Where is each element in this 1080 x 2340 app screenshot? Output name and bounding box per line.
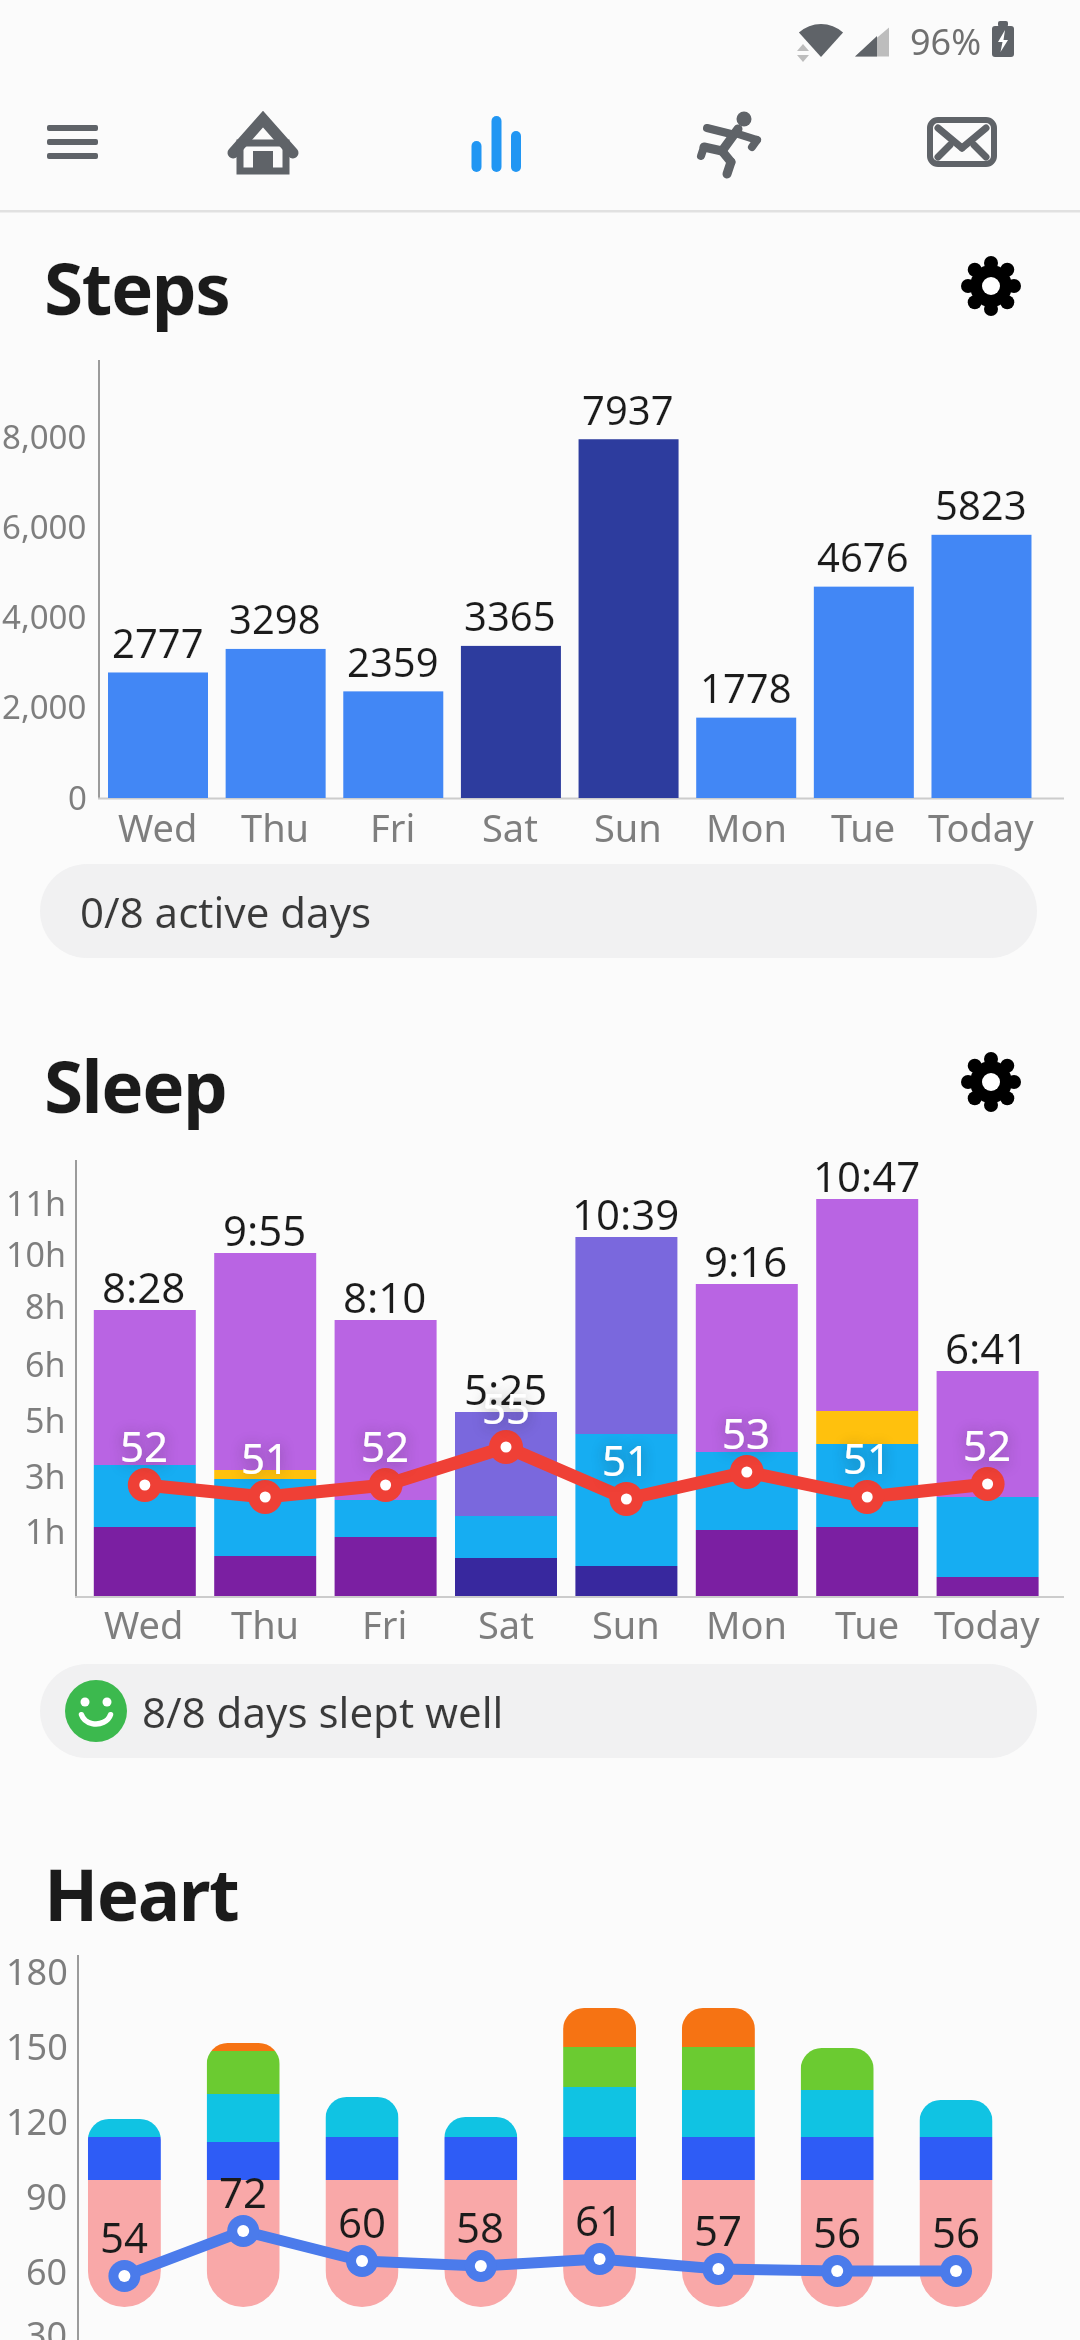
staticText: 90 [26, 2172, 68, 2221]
staticText: 8/8 days slept well [142, 1683, 504, 1740]
staticText: Thu [241, 801, 310, 853]
staticText: Wed [104, 1598, 184, 1650]
staticText: 56 [932, 2203, 981, 2260]
staticText: 3298 [229, 591, 321, 645]
staticText: 61 [575, 2191, 624, 2248]
staticText: 2359 [347, 634, 439, 688]
staticText: 9:55 [223, 1201, 307, 1258]
staticText: Fri [362, 1598, 408, 1650]
staticText: 8:28 [102, 1258, 186, 1315]
staticText: 52 [361, 1417, 410, 1474]
button[interactable]: 8/8 days slept well [40, 1664, 1037, 1758]
staticText: 51 [241, 1429, 290, 1486]
staticText: 5h [25, 1397, 66, 1443]
staticText: 2777 [112, 615, 204, 669]
staticText: Mon [706, 801, 787, 853]
staticText: Sun [592, 1598, 660, 1650]
staticText: 6:41 [945, 1319, 1029, 1376]
staticText: 58 [456, 2198, 505, 2255]
staticText: 3h [25, 1453, 66, 1499]
staticText: 6,000 [2, 504, 87, 549]
staticText: 96% [910, 17, 982, 66]
staticText: 55 [482, 1379, 531, 1436]
staticText: Wed [118, 801, 198, 853]
staticText: 0/8 active days [80, 883, 372, 940]
button[interactable] [455, 103, 539, 187]
staticText: 4676 [817, 529, 909, 583]
staticText: 120 [6, 2097, 68, 2146]
staticText: 30 [26, 2310, 68, 2340]
staticText: 6h [25, 1341, 66, 1387]
button[interactable] [687, 103, 771, 187]
staticText: Fri [370, 801, 416, 853]
staticText: 3365 [464, 588, 556, 642]
staticText: 10:47 [813, 1147, 921, 1204]
staticText: 54 [100, 2208, 149, 2265]
staticText: 51 [602, 1431, 651, 1488]
staticText: 10h [6, 1231, 66, 1277]
staticText: 1778 [700, 660, 792, 714]
button[interactable] [920, 103, 1004, 187]
staticText: Tue [831, 801, 896, 853]
staticText: 5:25 [464, 1360, 548, 1417]
staticText: 8:10 [343, 1268, 427, 1325]
staticText: 8h [25, 1283, 66, 1329]
staticText: 72 [219, 2163, 268, 2220]
staticText: Mon [706, 1598, 787, 1650]
button[interactable] [955, 250, 1027, 322]
staticText: 9:16 [704, 1232, 788, 1289]
staticText: Sleep [44, 1037, 227, 1134]
staticText: 53 [722, 1404, 771, 1461]
staticText: 51 [843, 1429, 892, 1486]
staticText: 60 [338, 2193, 387, 2250]
staticText: 4,000 [2, 594, 87, 639]
staticText: Sun [594, 801, 662, 853]
staticText: 0 [68, 775, 87, 820]
button[interactable] [221, 103, 305, 187]
staticText: 11h [6, 1180, 66, 1226]
staticText: 180 [6, 1947, 68, 1996]
staticText: 52 [120, 1417, 169, 1474]
staticText: Thu [231, 1598, 300, 1650]
staticText: Sat [482, 801, 538, 853]
staticText: 52 [963, 1416, 1012, 1473]
staticText: Sat [478, 1598, 534, 1650]
staticText: Today [934, 1598, 1040, 1650]
staticText: Tue [835, 1598, 900, 1650]
button[interactable]: 0/8 active days [40, 864, 1037, 958]
staticText: 7937 [582, 382, 674, 436]
staticText: 5823 [935, 477, 1027, 531]
staticText: Today [928, 801, 1034, 853]
staticText: Heart [44, 1845, 239, 1942]
staticText: 2,000 [2, 684, 87, 729]
staticText: 150 [6, 2022, 68, 2071]
staticText: 8,000 [2, 414, 87, 459]
staticText: 57 [694, 2201, 743, 2258]
staticText: 10:39 [572, 1185, 680, 1242]
staticText: Steps [44, 239, 230, 336]
staticText: 56 [813, 2203, 862, 2260]
button[interactable] [955, 1046, 1027, 1118]
button[interactable] [30, 103, 114, 187]
staticText: 1h [25, 1508, 66, 1554]
staticText: 60 [26, 2247, 68, 2296]
